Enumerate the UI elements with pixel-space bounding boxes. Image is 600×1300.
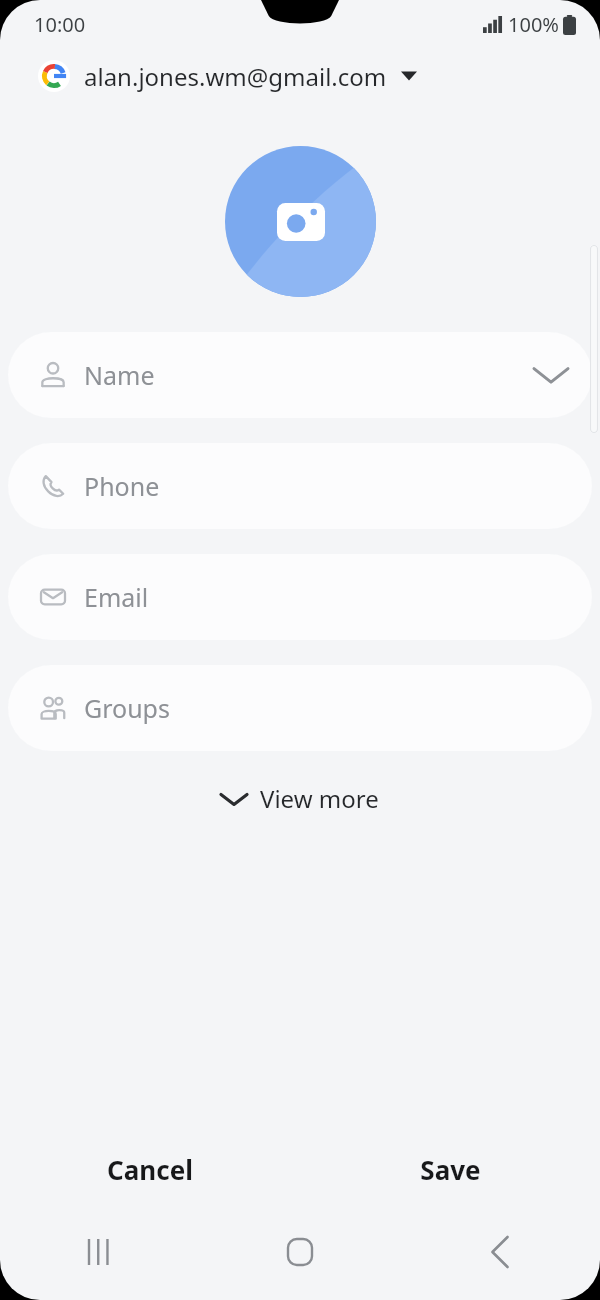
staticText: Cancel bbox=[107, 1152, 193, 1187]
button[interactable]: Cancel bbox=[0, 1138, 300, 1200]
button[interactable]: View more bbox=[203, 772, 397, 825]
button[interactable]: alan.jones.wm@gmail.com bbox=[0, 48, 600, 104]
staticText: alan.jones.wm@gmail.com bbox=[84, 60, 387, 93]
button[interactable]: Phone bbox=[8, 443, 592, 529]
staticText: View more bbox=[260, 782, 379, 815]
staticText: Name bbox=[84, 358, 155, 392]
staticText: Email bbox=[84, 580, 149, 614]
staticText: 100% bbox=[508, 11, 559, 38]
staticText: Save bbox=[420, 1152, 481, 1187]
button[interactable]: Name bbox=[8, 332, 592, 418]
button[interactable]: Back bbox=[400, 1226, 600, 1278]
button[interactable]: Add contact photo bbox=[225, 146, 376, 297]
button[interactable]: Email bbox=[8, 554, 592, 640]
staticText: 10:00 bbox=[34, 11, 86, 38]
button[interactable]: Groups bbox=[8, 665, 592, 751]
button[interactable]: Save bbox=[300, 1138, 600, 1200]
staticText: Phone bbox=[84, 469, 160, 503]
button[interactable]: Recent apps bbox=[0, 1226, 200, 1278]
staticText: Groups bbox=[84, 691, 170, 725]
button[interactable]: Home bbox=[200, 1226, 400, 1278]
